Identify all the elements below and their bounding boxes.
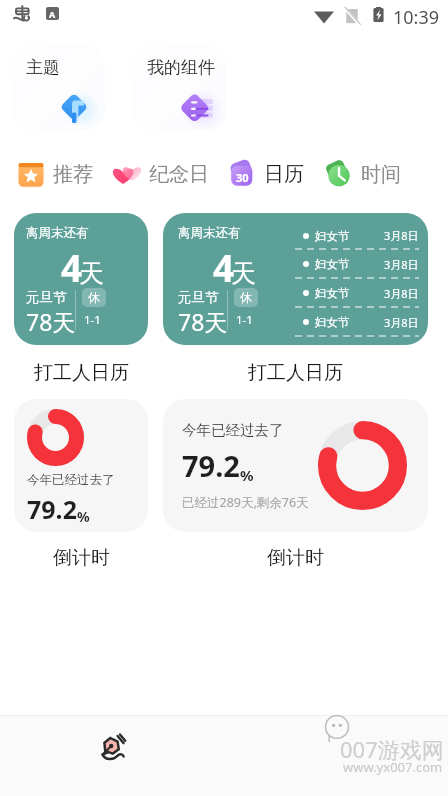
staticText: 倒计时 (267, 546, 324, 570)
staticText: 休 (88, 290, 100, 305)
staticText: 4 (61, 242, 83, 292)
staticText: 79.2 (182, 446, 240, 485)
button[interactable]: 主题 (11, 45, 105, 130)
staticText: 时间 (361, 162, 401, 187)
staticText: 今年已经过去了 (182, 421, 284, 439)
staticText: 1-1 (236, 312, 253, 328)
staticText: 1-1 (84, 312, 101, 328)
staticText: 10:39 (393, 5, 440, 30)
staticText: 已经过289天,剩余76天 (182, 494, 309, 511)
button[interactable]: 离周末还有 (14, 213, 148, 345)
staticText: A (49, 8, 56, 20)
staticText: 日历 (264, 162, 304, 187)
staticText: 元旦节 (26, 289, 67, 306)
staticText: 3月8日 (384, 257, 419, 272)
button[interactable]: 我的组件 (132, 45, 226, 130)
staticText: 3月8日 (384, 315, 419, 330)
staticText: 78天 (178, 306, 228, 337)
staticText: www.yx007.com (343, 758, 443, 776)
button[interactable]: 纪念日 (111, 158, 209, 190)
button[interactable]: 今年已经过去了 (14, 399, 148, 532)
staticText: % (77, 507, 90, 526)
button[interactable]: 今年已经过去了 (163, 399, 428, 532)
staticText: 打工人日历 (34, 361, 129, 385)
staticText: 推荐 (53, 162, 93, 187)
button[interactable]: 30 (226, 158, 304, 190)
button[interactable]: Edit (92, 728, 132, 768)
staticText: 天 (79, 258, 104, 289)
staticText: 007游戏网 (340, 734, 444, 764)
staticText: 4 (213, 242, 235, 292)
button[interactable]: 推荐 (15, 158, 93, 190)
staticText: 3月8日 (384, 228, 419, 243)
staticText: 倒计时 (53, 546, 110, 570)
staticText: 妇女节 (315, 315, 350, 329)
staticText: 78天 (26, 306, 76, 337)
staticText: 妇女节 (315, 257, 350, 271)
staticText: 主题 (26, 57, 60, 78)
staticText: 纪念日 (149, 162, 209, 187)
staticText: 天 (231, 258, 256, 289)
staticText: 离周末还有 (26, 225, 89, 241)
staticText: 今年已经过去了 (27, 472, 115, 488)
staticText: 离周末还有 (178, 225, 241, 241)
staticText: 30 (236, 170, 249, 185)
staticText: 79.2 (27, 492, 77, 526)
button[interactable]: 离周末还有 (163, 213, 428, 345)
staticText: 妇女节 (315, 229, 350, 243)
staticText: 我的组件 (147, 57, 215, 78)
staticText: 休 (240, 290, 252, 305)
button[interactable]: 时间 (323, 158, 401, 190)
staticText: % (240, 465, 254, 485)
staticText: 打工人日历 (248, 361, 343, 385)
staticText: 妇女节 (315, 286, 350, 300)
staticText: 3月8日 (384, 286, 419, 301)
staticText: 元旦节 (178, 289, 219, 306)
